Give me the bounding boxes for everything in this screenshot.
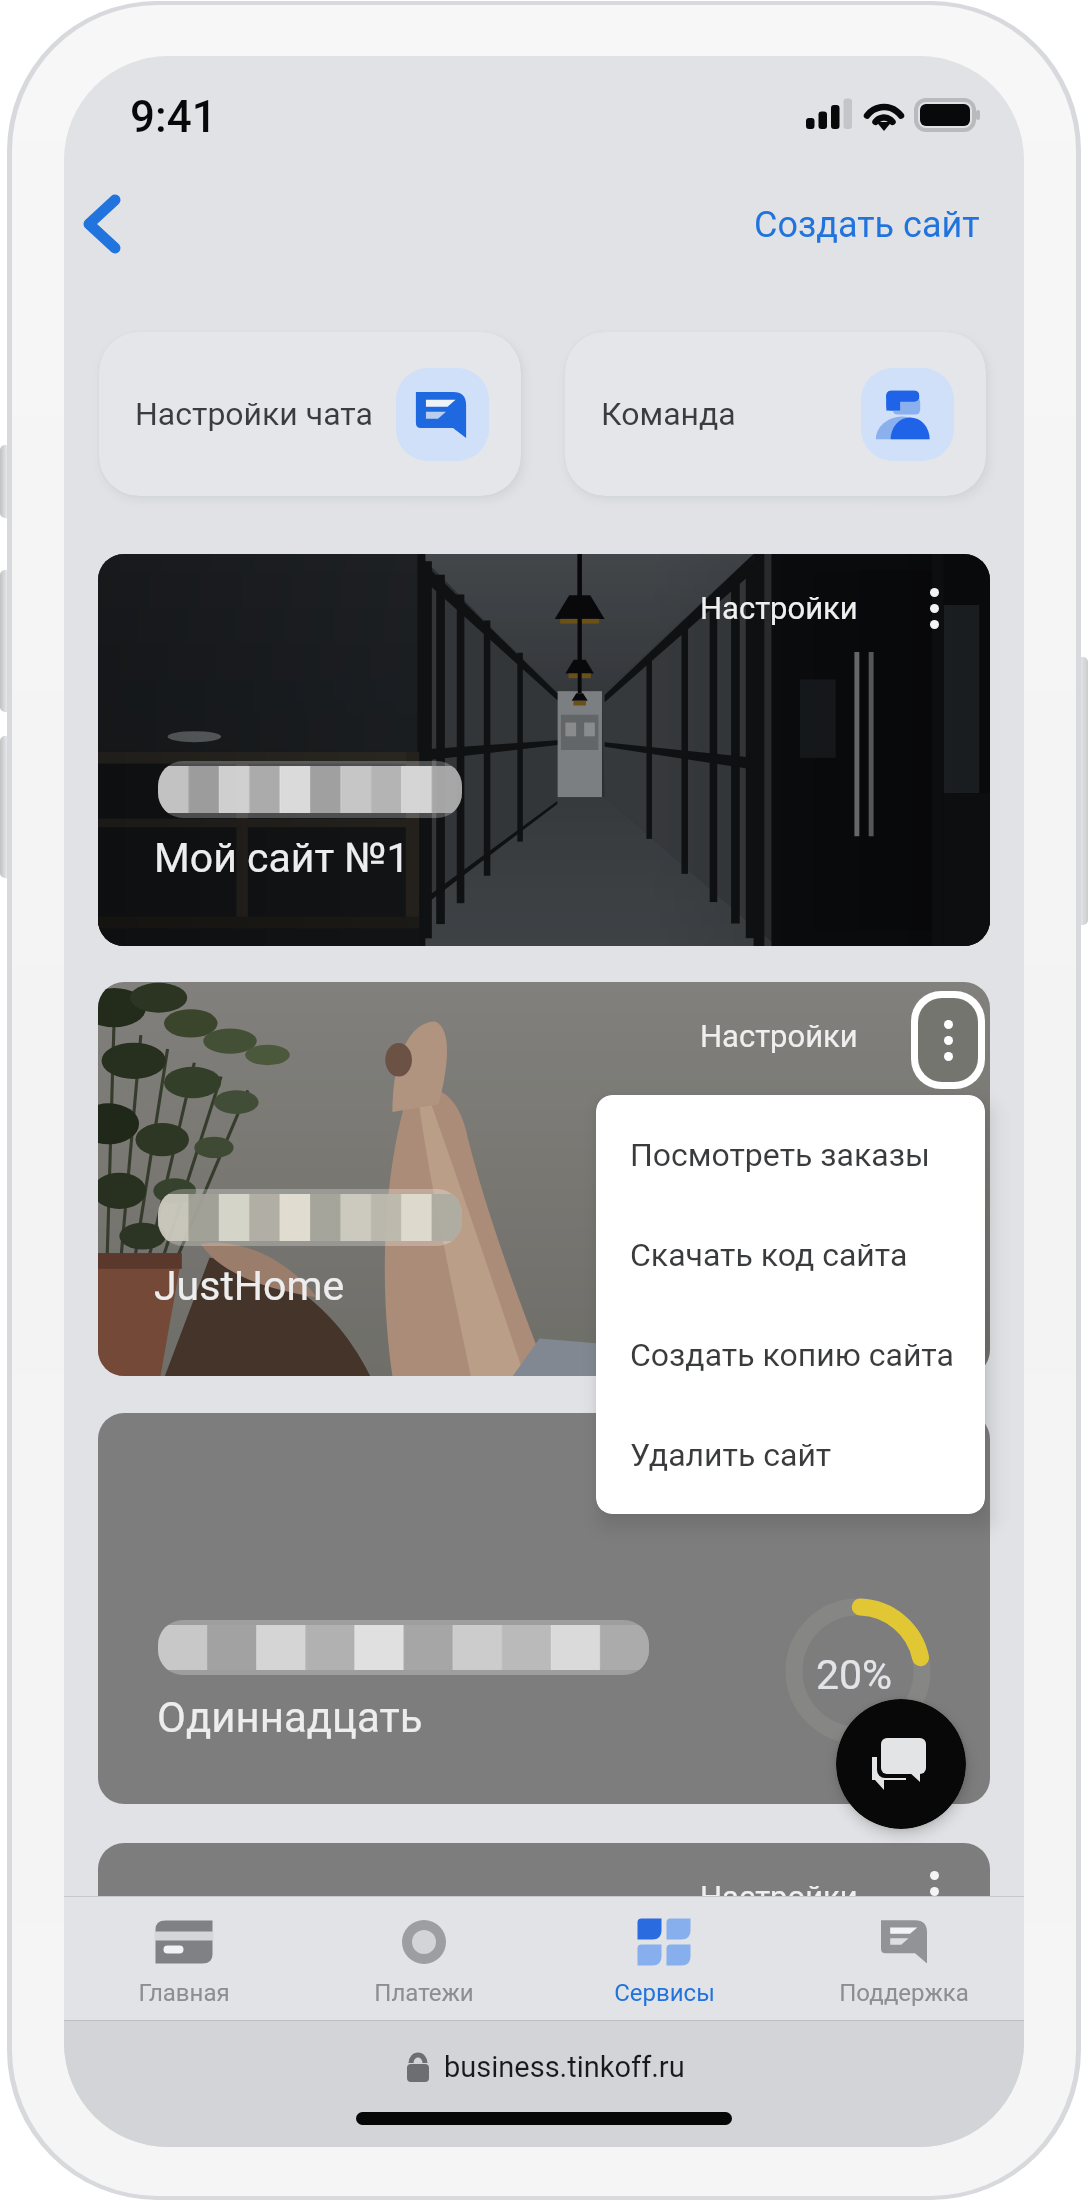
button[interactable]: Создать копию сайта	[596, 1305, 985, 1405]
button[interactable]: Скачать код сайта	[596, 1205, 985, 1305]
staticText: Скачать код сайта	[630, 1236, 908, 1274]
button[interactable]: Ещё	[911, 991, 985, 1089]
staticText: Поддержка	[839, 1979, 969, 2007]
button[interactable]: Ещё	[903, 1000, 965, 1072]
staticText: Платежи	[374, 1979, 474, 2007]
button[interactable]: Настройки чата	[99, 332, 521, 496]
button[interactable]: Назад	[72, 180, 162, 270]
staticText: Удалить сайт	[630, 1436, 832, 1474]
button[interactable]: Удалить сайт	[596, 1405, 985, 1505]
button[interactable]: Ещё	[903, 1861, 965, 1903]
button[interactable]: Главная	[64, 1896, 304, 1944]
button[interactable]: Ещё	[903, 572, 965, 644]
staticText: business.tinkoff.ru	[444, 2050, 685, 2084]
button[interactable]: Посмотреть заказы	[596, 1105, 985, 1205]
staticText: Создать копию сайта	[630, 1336, 954, 1374]
button[interactable]: Настройки	[672, 1006, 858, 1066]
button[interactable]: Поддержка	[784, 1896, 1024, 1944]
button[interactable]: Настройки	[98, 982, 990, 1376]
staticText: Главная	[138, 1979, 230, 2007]
button[interactable]: Сервисы	[544, 1896, 784, 1944]
staticText: Посмотреть заказы	[630, 1136, 930, 1174]
button[interactable]: Настройки	[672, 578, 858, 638]
staticText: Сервисы	[614, 1979, 715, 2007]
button[interactable]: Настройки	[672, 1867, 858, 1903]
button[interactable]: Платежи	[304, 1896, 544, 1944]
staticText: Команда	[601, 395, 736, 433]
staticText: 9:41	[130, 91, 217, 143]
staticText: Настройки	[700, 1879, 858, 1903]
staticText: JustHome	[154, 1262, 345, 1310]
staticText: Настройки	[700, 1018, 858, 1054]
staticText: Мой сайт №1	[154, 834, 410, 882]
staticText: Настройки чата	[135, 395, 373, 433]
staticText: 20%	[816, 1651, 893, 1699]
button[interactable]: Команда	[565, 332, 986, 496]
button[interactable]: Одиннадцать	[98, 1413, 990, 1804]
staticText: Одиннадцать	[157, 1693, 423, 1742]
button[interactable]: Настройки	[98, 1843, 990, 1903]
button[interactable]: Настройки	[98, 554, 990, 946]
staticText: Создать сайт	[754, 204, 980, 246]
button[interactable]: Открыть чат	[836, 1699, 966, 1829]
staticText: Настройки	[700, 590, 858, 626]
button[interactable]: Создать сайт	[724, 186, 980, 264]
